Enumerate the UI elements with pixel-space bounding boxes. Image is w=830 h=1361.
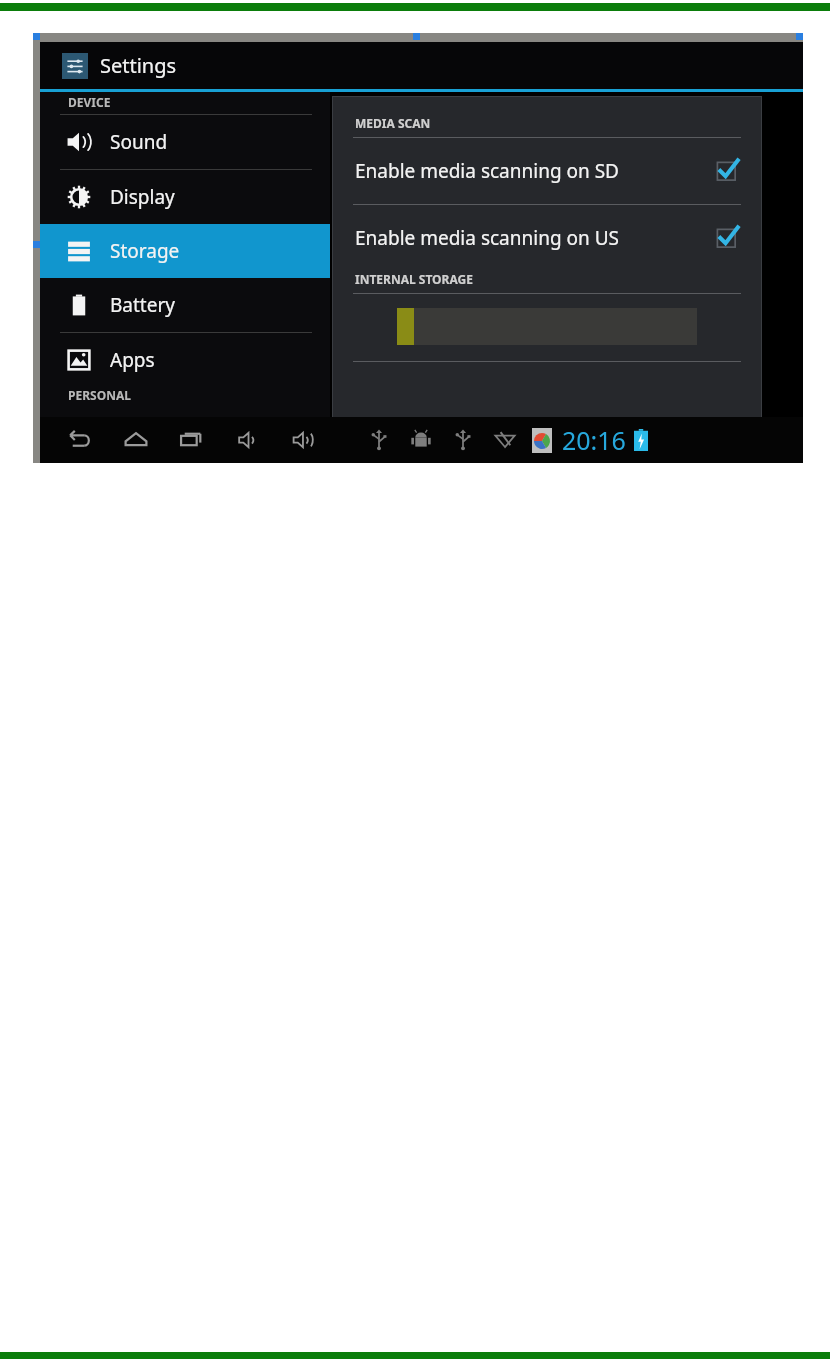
button[interactable]: Display bbox=[40, 170, 330, 224]
button[interactable]: Recents bbox=[164, 417, 220, 463]
button[interactable]: Volume down bbox=[220, 417, 276, 463]
staticText: Apps bbox=[110, 347, 155, 373]
staticText: Battery bbox=[110, 292, 175, 318]
button[interactable]: Apps bbox=[40, 333, 330, 387]
staticText: Display bbox=[110, 184, 175, 210]
button[interactable]: Enable media scanning on US bbox=[333, 205, 761, 271]
button[interactable]: Home bbox=[108, 417, 164, 463]
button[interactable]: Battery bbox=[40, 278, 330, 332]
staticText: Sound bbox=[110, 129, 168, 155]
other: Toggle Enable media scanning on US bbox=[715, 226, 739, 250]
staticText: Enable media scanning on US bbox=[355, 225, 707, 251]
other: Toggle Enable media scanning on SD bbox=[715, 159, 739, 183]
button[interactable]: Sound bbox=[40, 115, 330, 169]
button[interactable]: Storage bbox=[40, 224, 330, 278]
staticText: PERSONAL bbox=[68, 387, 131, 403]
staticText: INTERNAL STORAGE bbox=[355, 271, 473, 287]
button[interactable]: Back bbox=[52, 417, 108, 463]
staticText: Settings bbox=[100, 52, 177, 79]
staticText: 20:16 bbox=[562, 423, 626, 457]
staticText: Enable media scanning on SD bbox=[355, 158, 707, 184]
staticText: MEDIA SCAN bbox=[355, 115, 431, 131]
button[interactable]: Volume up bbox=[276, 417, 332, 463]
button[interactable]: Enable media scanning on SD bbox=[333, 138, 761, 204]
staticText: DEVICE bbox=[68, 94, 111, 110]
staticText: Storage bbox=[110, 238, 180, 264]
